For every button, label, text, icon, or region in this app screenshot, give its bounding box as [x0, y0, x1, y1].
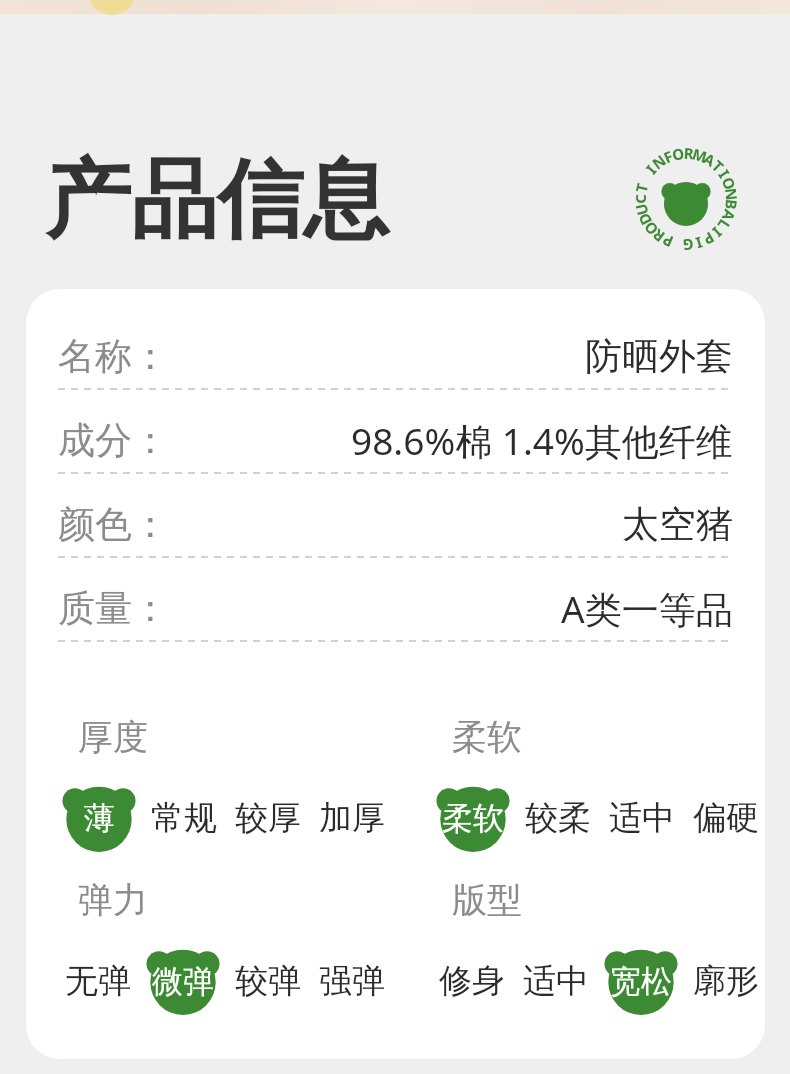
staticText: U	[630, 201, 652, 218]
staticText: D	[633, 210, 656, 229]
staticText: I	[708, 223, 727, 242]
staticText: 98.6%棉 1.4%其他纤维	[351, 415, 733, 466]
staticText: 强弹	[319, 960, 385, 1002]
staticText: 产品信息	[45, 146, 389, 254]
button[interactable]: 偏硬	[684, 769, 765, 855]
staticText: 较柔	[525, 797, 591, 839]
staticText: 防晒外套	[585, 333, 733, 380]
staticText: O	[639, 217, 662, 239]
button[interactable]: 适中	[600, 769, 684, 855]
staticText: I	[714, 166, 734, 182]
staticText: G	[682, 235, 694, 255]
staticText: 较厚	[235, 797, 301, 839]
button[interactable]: 颜色：	[58, 497, 733, 551]
staticText: 宽松	[610, 962, 672, 1001]
staticText: 廓形	[693, 960, 759, 1002]
button[interactable]: 无弹	[56, 932, 140, 1018]
staticText: 柔软	[442, 799, 504, 838]
staticText: M	[690, 143, 710, 167]
staticText: R	[683, 143, 694, 163]
staticText: I	[641, 161, 660, 178]
staticText: C	[630, 194, 650, 204]
staticText: R	[648, 225, 668, 247]
staticText: 质量：	[58, 585, 169, 632]
staticText: 微弹	[152, 962, 214, 1001]
staticText: A	[718, 207, 740, 224]
button[interactable]: 较柔	[516, 769, 600, 855]
staticText: O	[670, 143, 686, 165]
staticText: A类一等品	[561, 583, 733, 634]
button[interactable]: 柔软	[430, 769, 516, 855]
button[interactable]: 廓形	[684, 932, 765, 1018]
staticText: B	[721, 198, 742, 210]
staticText: 颜色：	[58, 501, 169, 548]
staticText: N	[648, 150, 670, 174]
staticText: 柔软	[452, 715, 522, 759]
staticText: 厚度	[78, 715, 148, 759]
button[interactable]: 薄	[56, 769, 142, 855]
staticText: A	[700, 148, 719, 171]
button[interactable]: 名称：	[58, 329, 733, 383]
staticText: L	[713, 215, 735, 234]
staticText: 太空猪	[622, 501, 733, 548]
button[interactable]: 微弹	[140, 932, 226, 1018]
staticText: T	[708, 155, 728, 176]
button[interactable]: Balipig product information stamp	[620, 133, 752, 265]
button[interactable]: 修身	[430, 932, 514, 1018]
staticText: T	[631, 181, 652, 195]
staticText: 偏硬	[693, 797, 759, 839]
staticText: 无弹	[65, 960, 131, 1002]
staticText: P	[659, 230, 676, 252]
button[interactable]: 强弹	[310, 932, 394, 1018]
button[interactable]: 加厚	[310, 769, 394, 855]
staticText: 较弹	[235, 960, 301, 1002]
button[interactable]: 较弹	[226, 932, 310, 1018]
staticText: 版型	[452, 878, 522, 922]
button[interactable]: 常规	[142, 769, 226, 855]
staticText: 名称：	[58, 333, 169, 380]
button[interactable]: 较厚	[226, 769, 310, 855]
staticText: P	[700, 228, 718, 250]
button[interactable]: 宽松	[598, 932, 684, 1018]
staticText: 适中	[523, 960, 589, 1002]
staticText: 适中	[609, 797, 675, 839]
staticText: 常规	[151, 797, 217, 839]
button[interactable]: 适中	[514, 932, 598, 1018]
staticText: N	[721, 186, 742, 202]
button[interactable]: 成分：	[58, 413, 733, 467]
staticText: O	[718, 174, 741, 192]
staticText: I	[693, 233, 705, 253]
staticText: 成分：	[58, 417, 169, 464]
button[interactable]: 质量：	[58, 581, 733, 635]
staticText: 修身	[439, 960, 505, 1002]
staticText: 薄	[84, 799, 115, 838]
staticText: F	[660, 146, 676, 167]
staticText: 加厚	[319, 797, 385, 839]
staticText: 弹力	[78, 878, 148, 922]
